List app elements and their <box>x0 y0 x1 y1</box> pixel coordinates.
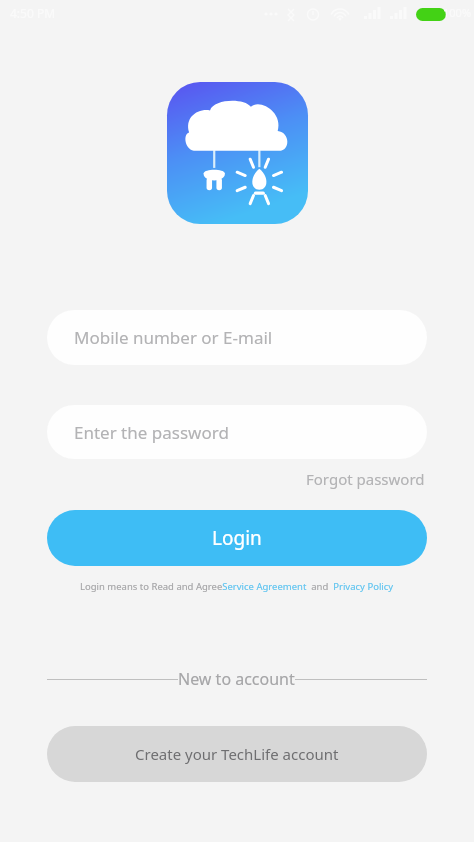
staticText: Create your TechLife account <box>135 744 339 764</box>
staticText: Login means to Read and AgreeService Agr… <box>80 580 394 593</box>
button[interactable]: Forgot password <box>304 465 427 493</box>
staticText: Mobile number or E-mail <box>74 326 273 349</box>
staticText: Enter the password <box>74 421 229 444</box>
staticText: Forgot password <box>306 469 425 489</box>
button[interactable]: Login <box>47 510 427 566</box>
button[interactable]: Create your TechLife account <box>47 726 427 782</box>
staticText: Login <box>212 525 262 551</box>
button[interactable]: Mobile number or E-mail <box>47 310 427 365</box>
staticText: New to account <box>178 668 295 690</box>
staticText: 100% <box>443 5 472 20</box>
button[interactable]: Enter the password <box>47 405 427 459</box>
